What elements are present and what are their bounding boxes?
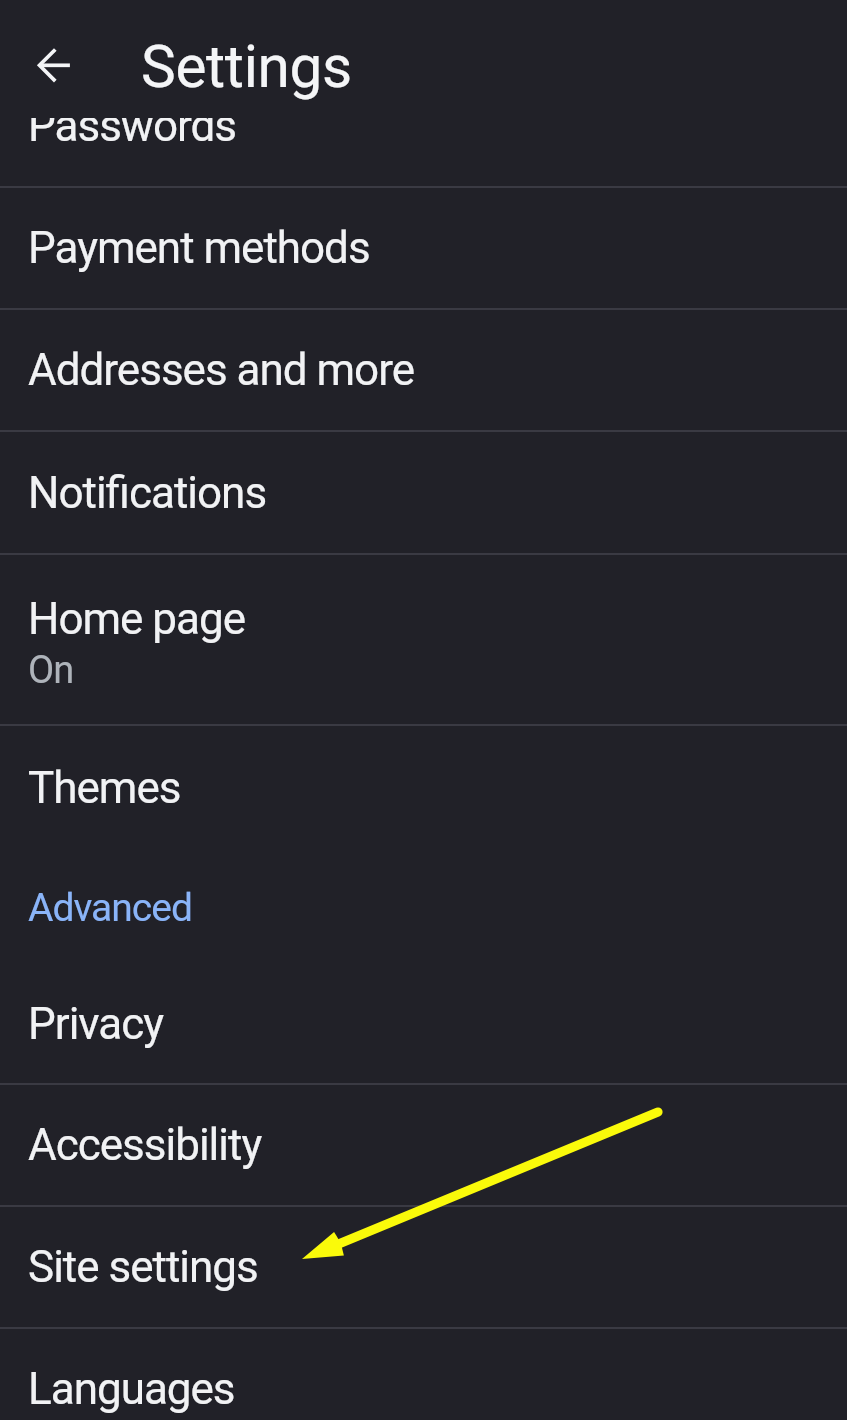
button[interactable]: Privacy: [0, 965, 847, 1083]
button[interactable]: Back: [16, 28, 90, 102]
staticText: Privacy: [28, 998, 164, 1050]
staticText: Advanced: [28, 885, 192, 931]
button[interactable]: Addresses and more: [0, 310, 847, 430]
staticText: Addresses and more: [28, 344, 415, 396]
button[interactable]: Home page: [0, 555, 847, 724]
button[interactable]: Themes: [0, 726, 847, 846]
button[interactable]: Notifications: [0, 432, 847, 553]
button[interactable]: Site settings: [0, 1207, 847, 1327]
staticText: Settings: [141, 33, 352, 102]
staticText: Languages: [28, 1363, 235, 1415]
staticText: Notifications: [28, 467, 267, 519]
staticText: Payment methods: [28, 222, 370, 274]
button[interactable]: Advanced: [0, 846, 847, 965]
button[interactable]: Languages: [0, 1329, 847, 1420]
button[interactable]: Passwords: [0, 66, 847, 186]
staticText: Themes: [28, 762, 181, 814]
staticText: Accessibility: [28, 1119, 262, 1171]
staticText: On: [28, 648, 74, 693]
staticText: Site settings: [28, 1241, 258, 1293]
staticText: Home page: [28, 593, 245, 645]
button[interactable]: Payment methods: [0, 188, 847, 308]
staticText: Passwords: [28, 100, 237, 152]
button[interactable]: Accessibility: [0, 1085, 847, 1205]
